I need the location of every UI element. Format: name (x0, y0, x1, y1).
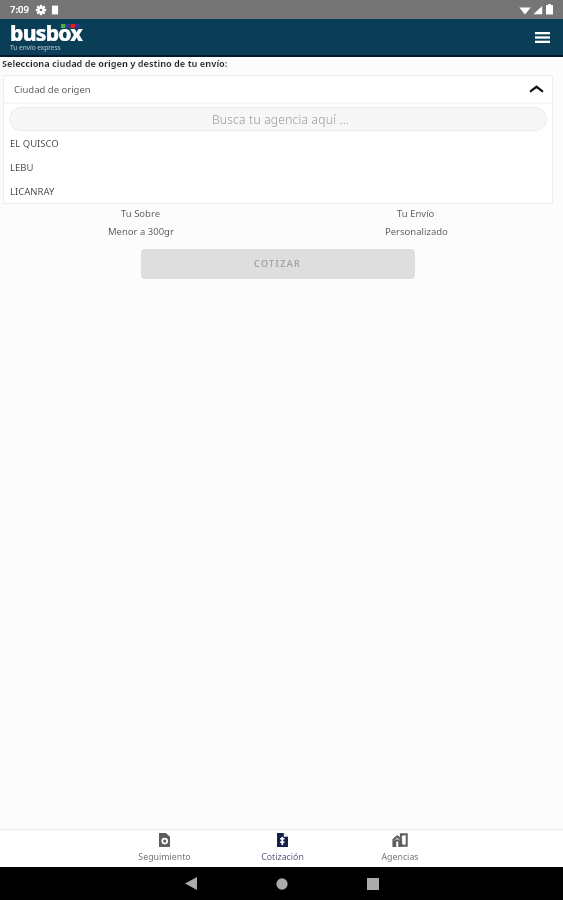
staticText: Tu Sobre (121, 207, 161, 220)
button[interactable]: Busca tu agencia aquí ... (9, 107, 547, 131)
button[interactable]: LICANRAY (3, 179, 553, 203)
staticText: Seguimiento (138, 851, 191, 863)
button[interactable]: Seguimiento (105, 828, 223, 867)
staticText: COTIZAR (254, 257, 302, 269)
button[interactable]: EL QUISCO (3, 131, 553, 155)
button[interactable]: Home (236, 867, 327, 900)
staticText: Ciudad de origen (14, 83, 91, 96)
staticText: Busca tu agencia aquí ... (212, 111, 350, 127)
staticText: busbox (10, 19, 83, 48)
button[interactable]: Cotización (223, 828, 341, 867)
button[interactable]: Agencias (341, 828, 459, 867)
button[interactable]: LEBU (3, 155, 553, 179)
staticText: 7:09 (10, 3, 29, 16)
staticText: Personalizado (385, 225, 448, 238)
staticText: Tu Envío (397, 207, 435, 220)
button[interactable]: COTIZAR (141, 249, 415, 279)
staticText: LEBU (10, 161, 34, 174)
staticText: Menor a 300gr (108, 225, 174, 238)
staticText: Agencias (381, 851, 419, 863)
staticText: Tu envío express (10, 43, 61, 52)
staticText: Selecciona ciudad de origen y destino de… (2, 57, 228, 69)
button[interactable]: Recent apps (327, 867, 418, 900)
staticText: LICANRAY (10, 185, 55, 198)
staticText: EL QUISCO (10, 137, 59, 150)
button[interactable]: Menu (530, 25, 554, 49)
staticText: Cotización (261, 851, 304, 863)
button[interactable]: Back (145, 867, 236, 900)
button[interactable]: Ciudad de origen (3, 75, 553, 103)
